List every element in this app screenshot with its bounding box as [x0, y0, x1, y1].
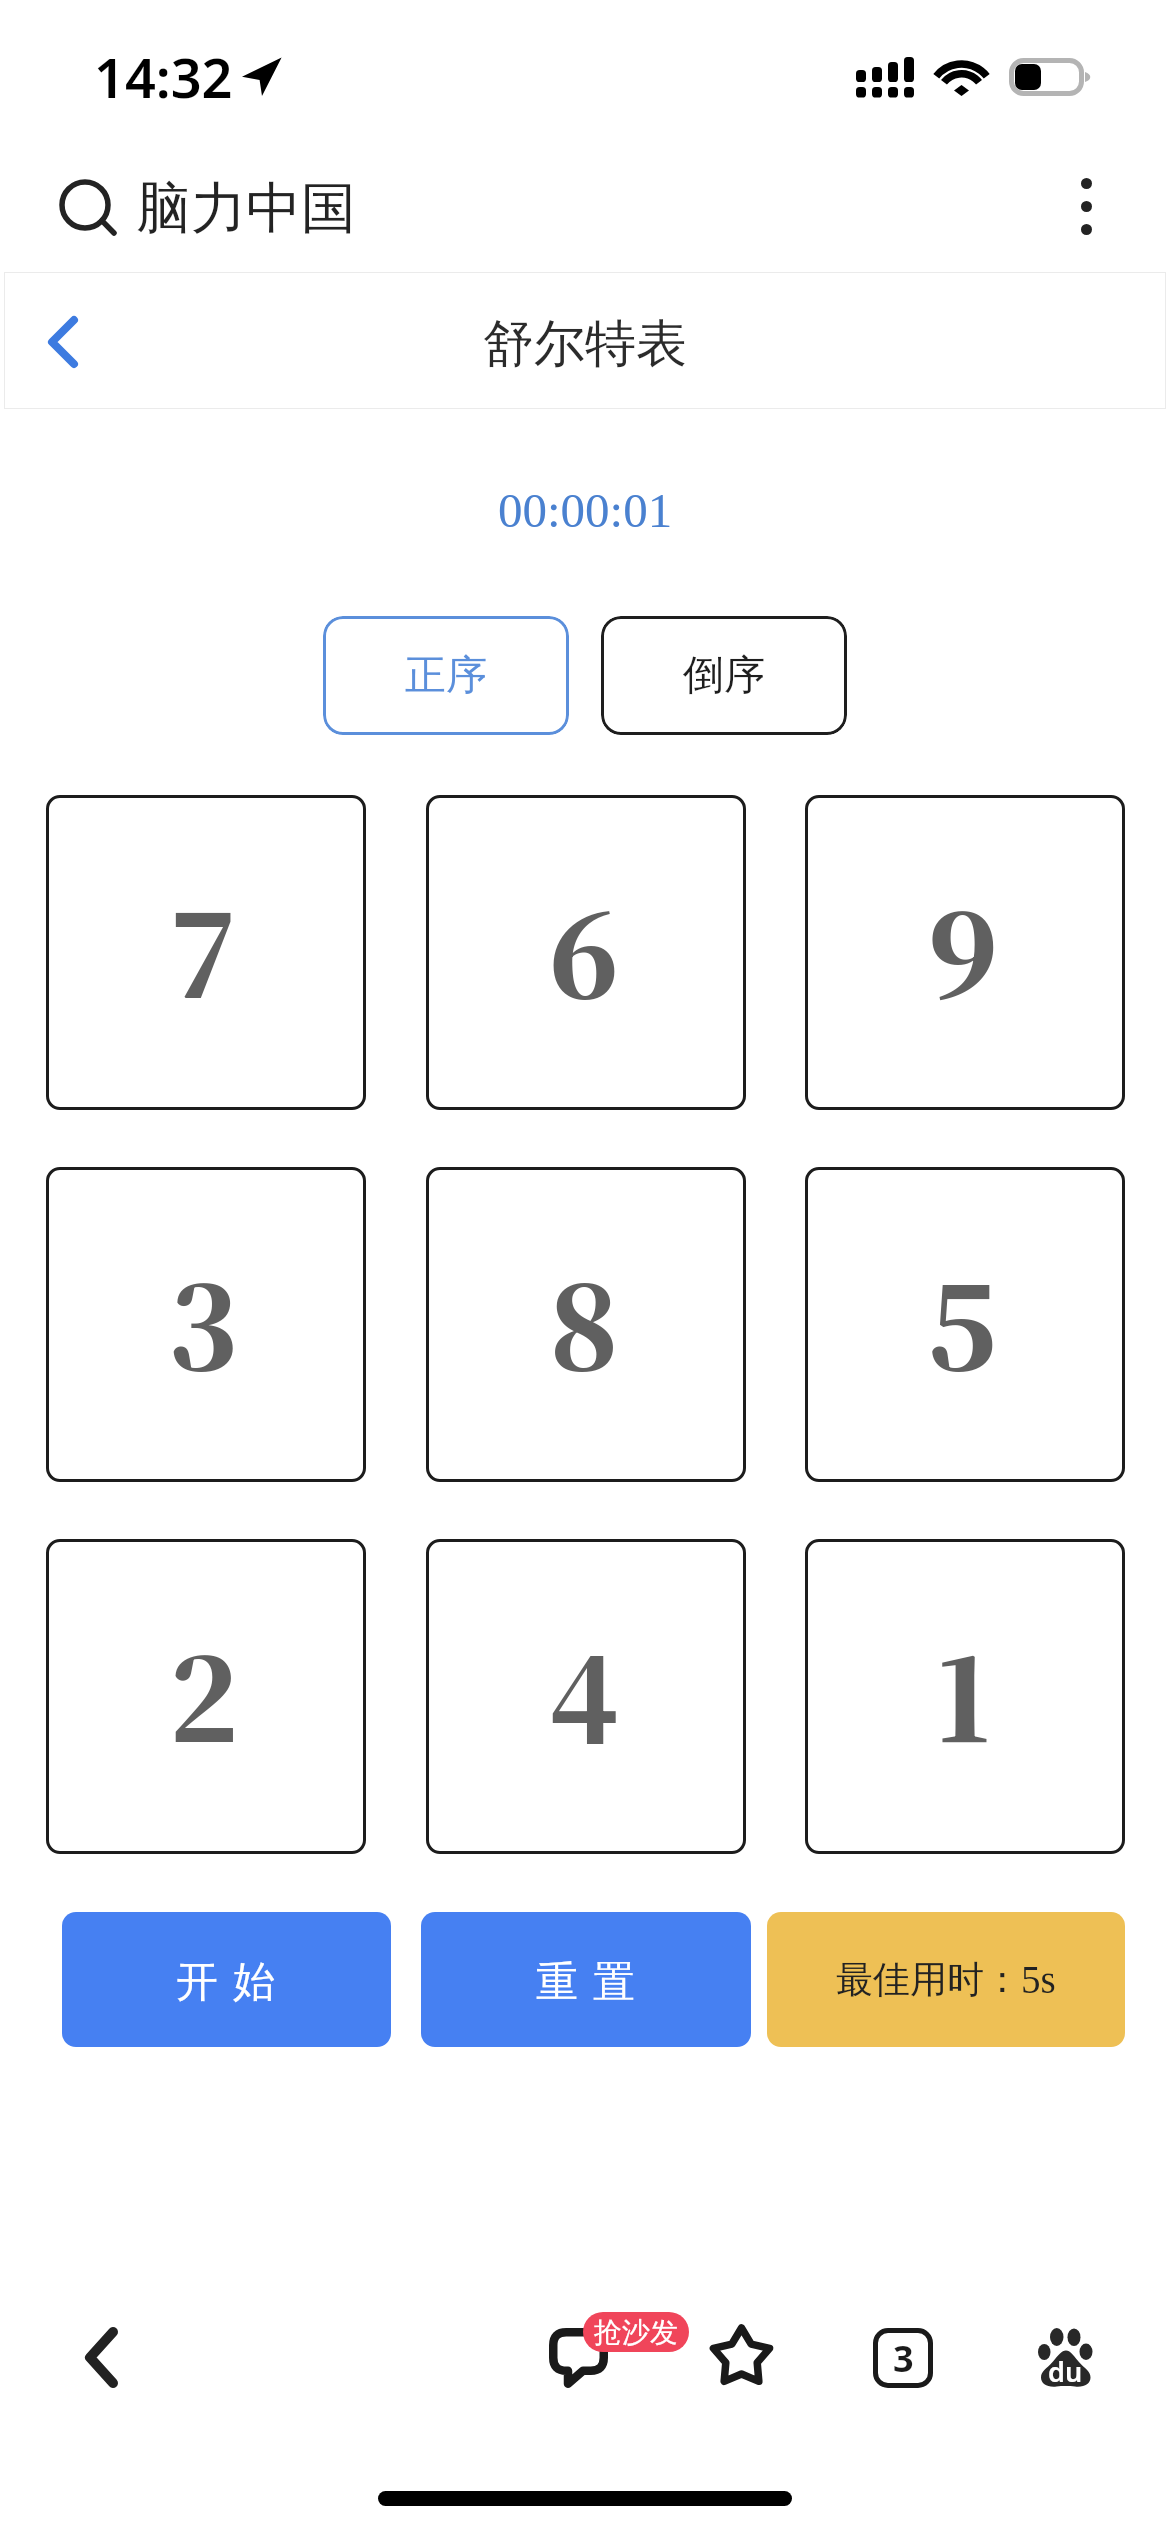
staticText: 舒尔特表 — [483, 312, 687, 376]
button[interactable]: Search — [58, 167, 356, 249]
staticText: 00:00:01 — [498, 483, 673, 537]
button[interactable]: 正序 — [323, 616, 569, 735]
staticText: 脑力中国 — [136, 174, 356, 243]
button[interactable]: 9 — [805, 795, 1125, 1110]
staticText: 开 始 — [176, 1951, 277, 2008]
staticText: 6 — [549, 867, 619, 1031]
button[interactable]: 4 — [426, 1539, 746, 1854]
button[interactable]: 8 — [426, 1167, 746, 1482]
button[interactable]: 3 — [46, 1167, 366, 1482]
staticText: 重 置 — [536, 1951, 637, 2008]
button[interactable]: More options — [1081, 178, 1092, 235]
button[interactable]: 2 — [46, 1539, 366, 1854]
button[interactable]: Tabs — [873, 2328, 933, 2388]
staticText: 14:32 — [94, 40, 233, 114]
staticText: 4 — [549, 1611, 619, 1775]
button[interactable]: 5 — [805, 1167, 1125, 1482]
staticText: 1 — [937, 1611, 990, 1775]
button[interactable]: 重 置 — [421, 1912, 751, 2047]
staticText: 2 — [169, 1611, 239, 1775]
button[interactable]: 倒序 — [601, 616, 847, 735]
staticText: 最佳用时： — [836, 1956, 1021, 2003]
other: Search — [58, 177, 120, 239]
staticText: 正序 — [405, 650, 487, 702]
button[interactable]: Favorite — [705, 2322, 778, 2393]
button[interactable]: Back — [85, 2327, 118, 2388]
button[interactable]: 开 始 — [62, 1912, 391, 2047]
button[interactable]: 7 — [46, 795, 366, 1110]
staticText: 3 — [169, 1239, 239, 1403]
staticText: 倒序 — [683, 650, 765, 702]
button[interactable]: 最佳用时： — [767, 1912, 1125, 2047]
button[interactable]: 6 — [426, 795, 746, 1110]
staticText: 5s — [1021, 1958, 1056, 2001]
staticText: 9 — [928, 867, 998, 1031]
button[interactable]: Baidu — [1028, 2320, 1106, 2398]
button[interactable]: Back — [48, 316, 78, 368]
staticText: 8 — [549, 1239, 619, 1403]
button[interactable]: Comments — [544, 2306, 696, 2398]
staticText: 7 — [169, 867, 239, 1031]
staticText: 3 — [893, 2334, 914, 2383]
staticText: 抢沙发 — [594, 2315, 678, 2350]
button[interactable]: 1 — [805, 1539, 1125, 1854]
staticText: du — [1048, 2353, 1083, 2390]
staticText: 5 — [928, 1239, 998, 1403]
